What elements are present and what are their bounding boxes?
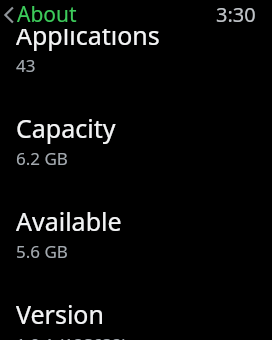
- staticText: Applications: [16, 18, 160, 52]
- staticText: 3:30: [216, 1, 256, 28]
- button[interactable]: Capacity: [0, 111, 272, 170]
- staticText: 43: [16, 54, 36, 77]
- button[interactable]: Back to About: [0, 0, 83, 29]
- button[interactable]: Available: [0, 204, 272, 263]
- staticText: Capacity: [16, 111, 116, 145]
- staticText: Available: [16, 204, 122, 238]
- button[interactable]: Version: [0, 297, 272, 340]
- staticText: Version: [16, 297, 104, 331]
- staticText: 6.2 GB: [16, 147, 68, 170]
- button[interactable]: Applications: [0, 18, 272, 77]
- staticText: About: [17, 0, 77, 29]
- staticText: 5.6 GB: [16, 240, 68, 263]
- staticText: 1.0.1 (12S632): [16, 333, 127, 340]
